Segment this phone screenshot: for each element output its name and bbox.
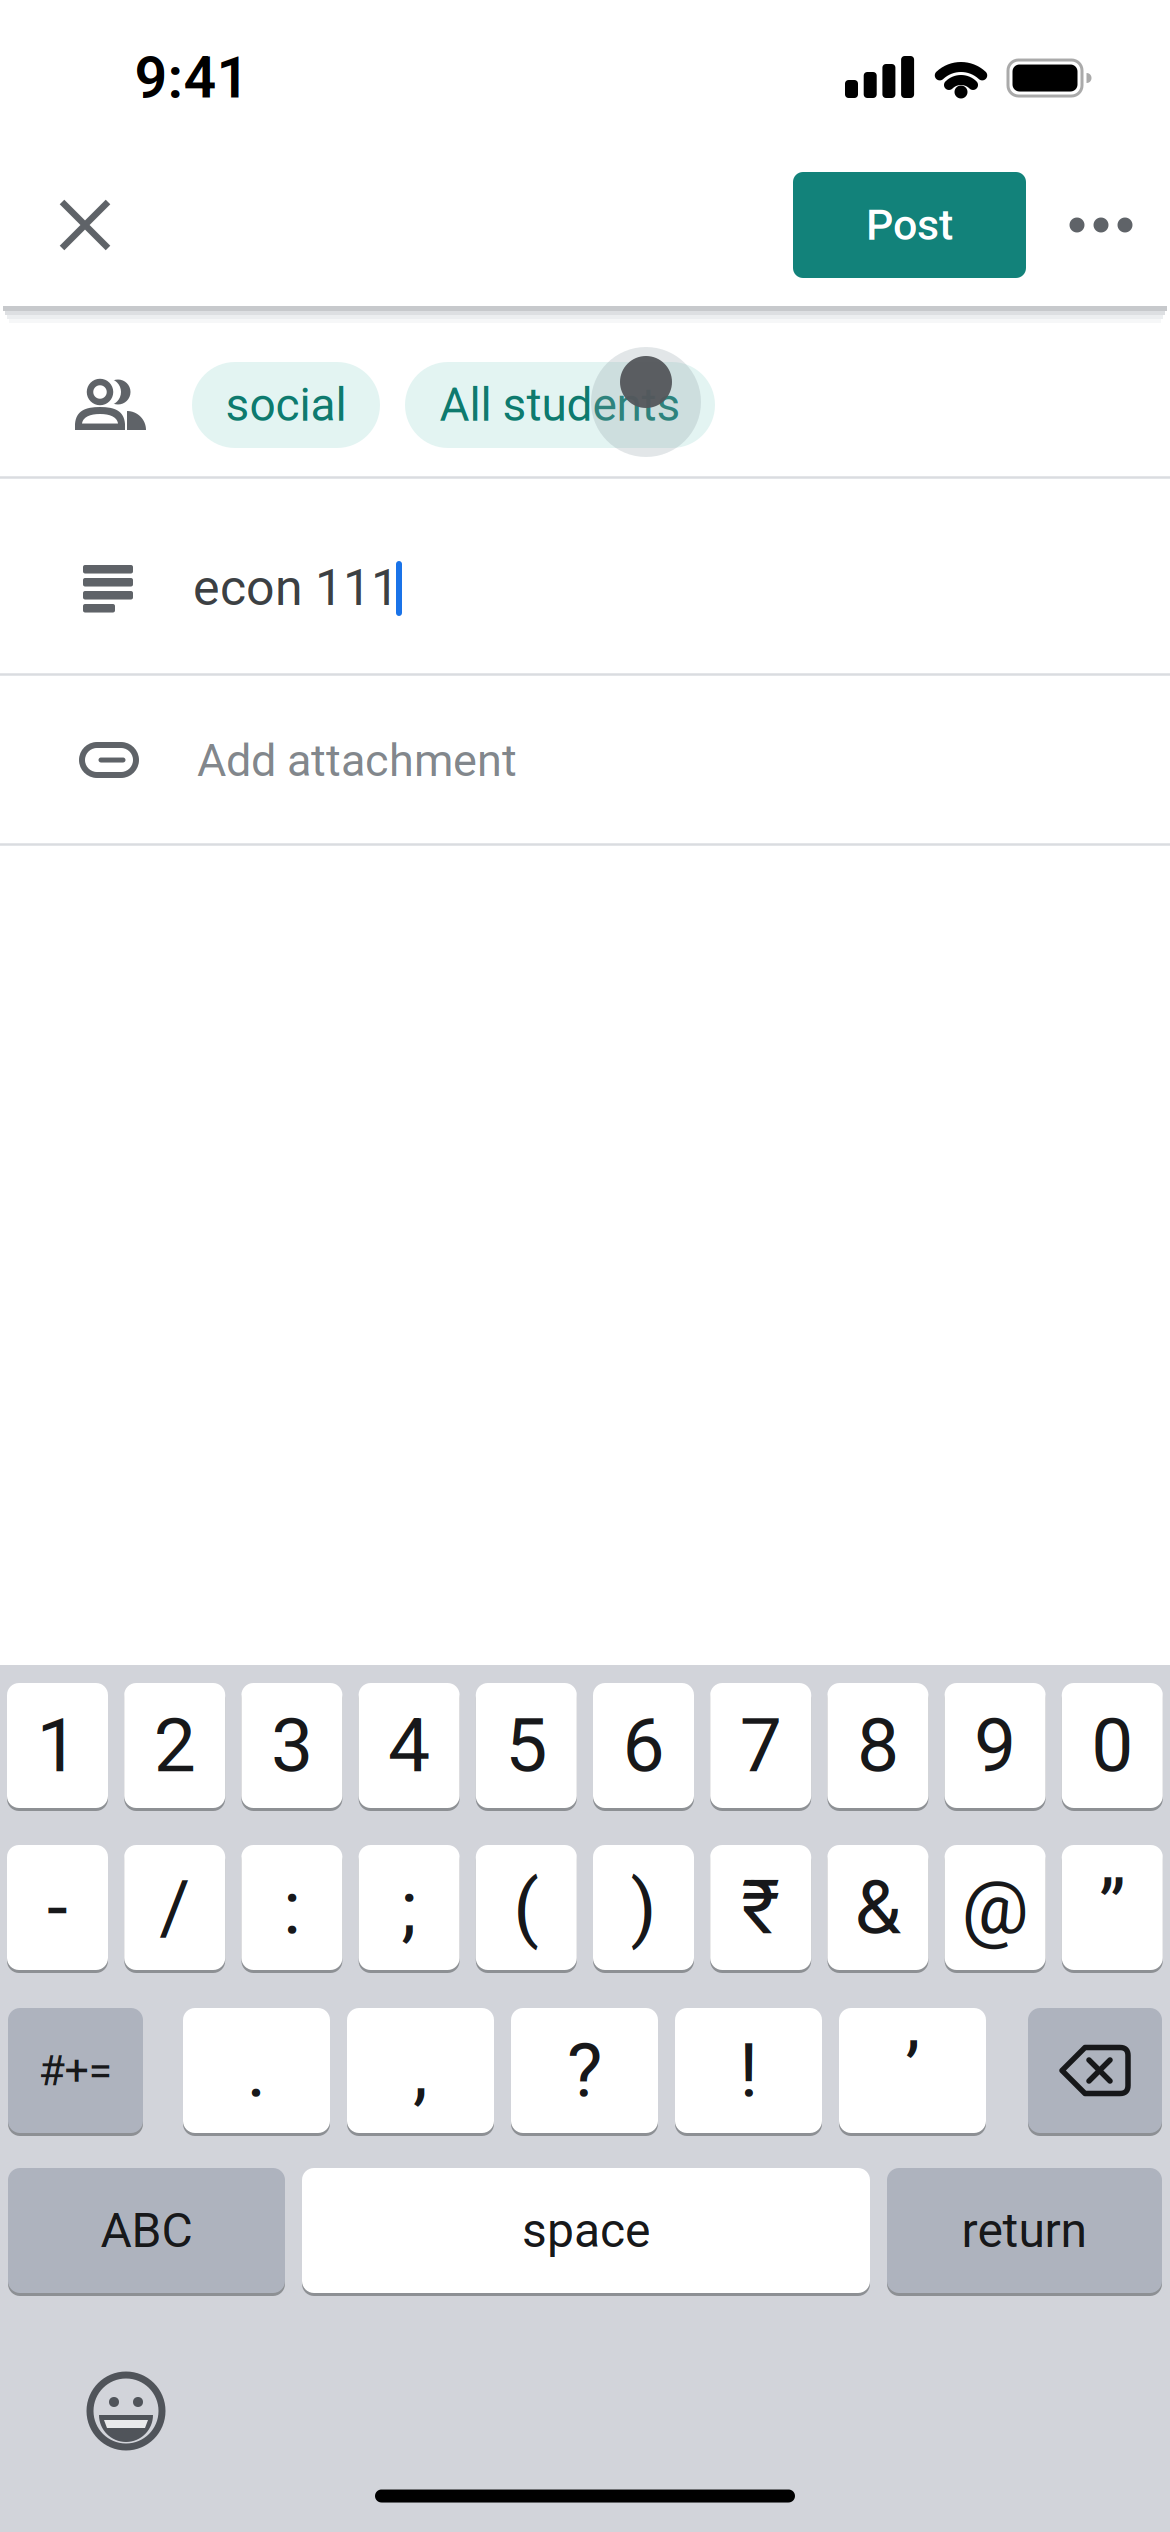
staticText: space: [522, 2202, 650, 2259]
staticText: 3: [271, 1702, 313, 1789]
button[interactable]: Emoji: [81, 2366, 171, 2456]
staticText: ): [630, 1864, 656, 1951]
button[interactable]: Close: [40, 180, 130, 270]
button[interactable]: !: [675, 2008, 822, 2133]
button[interactable]: @: [945, 1845, 1046, 1970]
staticText: ’: [905, 2027, 920, 2114]
staticText: social: [225, 378, 346, 432]
staticText: econ 111: [193, 559, 399, 617]
staticText: 9: [974, 1702, 1016, 1789]
button[interactable]: 9: [945, 1683, 1046, 1808]
staticText: &: [854, 1864, 901, 1951]
staticText: 6: [622, 1702, 664, 1789]
staticText: (: [513, 1864, 539, 1951]
button[interactable]: :: [241, 1845, 342, 1970]
staticText: ABC: [100, 2202, 192, 2259]
button[interactable]: All students: [405, 362, 715, 448]
button[interactable]: ): [593, 1845, 694, 1970]
staticText: @: [962, 1864, 1029, 1951]
button[interactable]: ”: [1062, 1845, 1163, 1970]
button[interactable]: ₹: [710, 1845, 811, 1970]
staticText: 5: [505, 1702, 547, 1789]
button[interactable]: ABC: [8, 2168, 285, 2293]
button[interactable]: Post: [793, 172, 1026, 278]
staticText: .: [246, 2027, 266, 2114]
staticText: ,: [413, 2027, 428, 2114]
button[interactable]: ,: [347, 2008, 494, 2133]
staticText: 0: [1091, 1702, 1133, 1789]
staticText: -: [47, 1864, 68, 1951]
staticText: Add attachment: [197, 734, 517, 787]
button[interactable]: More options: [1051, 180, 1151, 270]
button[interactable]: 4: [359, 1683, 460, 1808]
staticText: return: [961, 2202, 1087, 2259]
staticText: 2: [154, 1702, 196, 1789]
button[interactable]: ’: [839, 2008, 986, 2133]
staticText: /: [159, 1864, 190, 1951]
button[interactable]: space: [302, 2168, 870, 2293]
button[interactable]: social: [192, 362, 380, 448]
staticText: ?: [567, 2027, 602, 2114]
button[interactable]: Add attachment: [0, 675, 1170, 844]
button[interactable]: 3: [241, 1683, 342, 1808]
staticText: ₹: [741, 1864, 780, 1951]
staticText: #+=: [38, 2045, 112, 2096]
staticText: Post: [866, 200, 953, 250]
button[interactable]: .: [183, 2008, 330, 2133]
staticText: !: [739, 2027, 758, 2114]
button[interactable]: (: [476, 1845, 577, 1970]
button[interactable]: 8: [827, 1683, 928, 1808]
button[interactable]: 7: [710, 1683, 811, 1808]
button[interactable]: return: [887, 2168, 1162, 2293]
button[interactable]: -: [7, 1845, 108, 1970]
button[interactable]: Delete: [1028, 2008, 1162, 2133]
staticText: ”: [1099, 1864, 1126, 1951]
button[interactable]: 6: [593, 1683, 694, 1808]
button[interactable]: 1: [7, 1683, 108, 1808]
staticText: 9:41: [134, 44, 249, 112]
staticText: All students: [439, 378, 680, 432]
button[interactable]: 0: [1062, 1683, 1163, 1808]
button[interactable]: econ 111: [0, 478, 1170, 674]
button[interactable]: 2: [124, 1683, 225, 1808]
staticText: 4: [388, 1702, 430, 1789]
staticText: 7: [740, 1702, 782, 1789]
staticText: ;: [401, 1864, 417, 1951]
staticText: 8: [857, 1702, 899, 1789]
staticText: 1: [36, 1702, 78, 1789]
staticText: :: [283, 1864, 301, 1951]
button[interactable]: ?: [511, 2008, 658, 2133]
button[interactable]: ;: [359, 1845, 460, 1970]
button[interactable]: #+=: [8, 2008, 143, 2133]
button[interactable]: 5: [476, 1683, 577, 1808]
button[interactable]: &: [827, 1845, 928, 1970]
button[interactable]: /: [124, 1845, 225, 1970]
